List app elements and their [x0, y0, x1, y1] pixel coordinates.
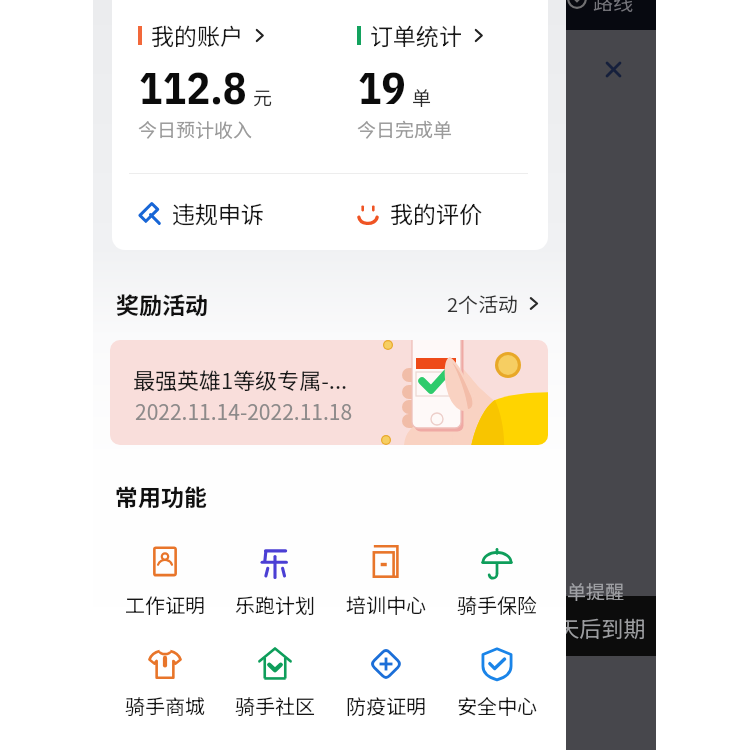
- staticText: 112.8: [139, 59, 247, 116]
- staticText: 培训中心: [346, 590, 426, 619]
- staticText: 今日预计收入: [138, 115, 253, 143]
- staticText: 我的账户: [151, 18, 243, 51]
- button[interactable]: [336, 637, 436, 717]
- staticText: 奖励活动: [116, 287, 208, 320]
- button[interactable]: [447, 536, 547, 616]
- staticText: 路线: [593, 0, 633, 16]
- staticText: 最强英雄1等级专属-...: [133, 363, 348, 395]
- staticText: 防疫证明: [346, 691, 426, 720]
- button[interactable]: [115, 536, 215, 616]
- staticText: 2022.11.14-2022.11.18: [135, 396, 353, 426]
- staticText: 接单提醒: [548, 577, 625, 605]
- button[interactable]: 我的账户: [138, 0, 353, 160]
- staticText: 骑手社区: [235, 691, 315, 720]
- staticText: 元: [253, 83, 273, 111]
- button[interactable]: [447, 637, 547, 717]
- staticText: 乐跑计划: [235, 590, 315, 619]
- staticText: 常用功能: [115, 479, 207, 512]
- staticText: 安全中心: [457, 691, 537, 720]
- staticText: 3天后到期: [545, 611, 646, 643]
- staticText: 工作证明: [125, 590, 205, 619]
- staticText: 19: [358, 59, 406, 116]
- staticText: 我的评价: [390, 196, 482, 229]
- staticText: 违规申诉: [172, 196, 264, 229]
- staticText: 单: [412, 83, 432, 111]
- button[interactable]: 奖励活动: [110, 283, 549, 323]
- button[interactable]: 订单统计: [357, 0, 548, 160]
- staticText: 今日完成单: [357, 115, 453, 143]
- button[interactable]: 违规申诉: [132, 191, 317, 239]
- staticText: 订单统计: [370, 18, 462, 51]
- staticText: 骑手保险: [457, 590, 537, 619]
- button[interactable]: Close: [597, 53, 629, 85]
- button[interactable]: 最强英雄1等级专属-...: [110, 340, 548, 445]
- staticText: 2个活动: [447, 289, 519, 318]
- button[interactable]: [336, 536, 436, 616]
- button[interactable]: 我的评价: [350, 191, 535, 239]
- button[interactable]: [115, 637, 215, 717]
- staticText: 骑手商城: [125, 691, 205, 720]
- button[interactable]: [225, 536, 325, 616]
- button[interactable]: [225, 637, 325, 717]
